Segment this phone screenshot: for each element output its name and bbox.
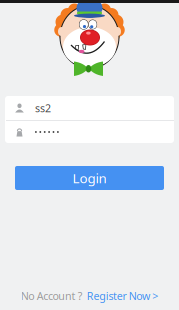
button[interactable]: Register Now >: [87, 289, 158, 303]
staticText: ss2: [35, 101, 51, 115]
staticText: Login: [72, 169, 106, 187]
staticText: Register Now >: [87, 289, 158, 303]
staticText: No Account ?: [21, 289, 83, 303]
button[interactable]: Login: [15, 166, 164, 190]
